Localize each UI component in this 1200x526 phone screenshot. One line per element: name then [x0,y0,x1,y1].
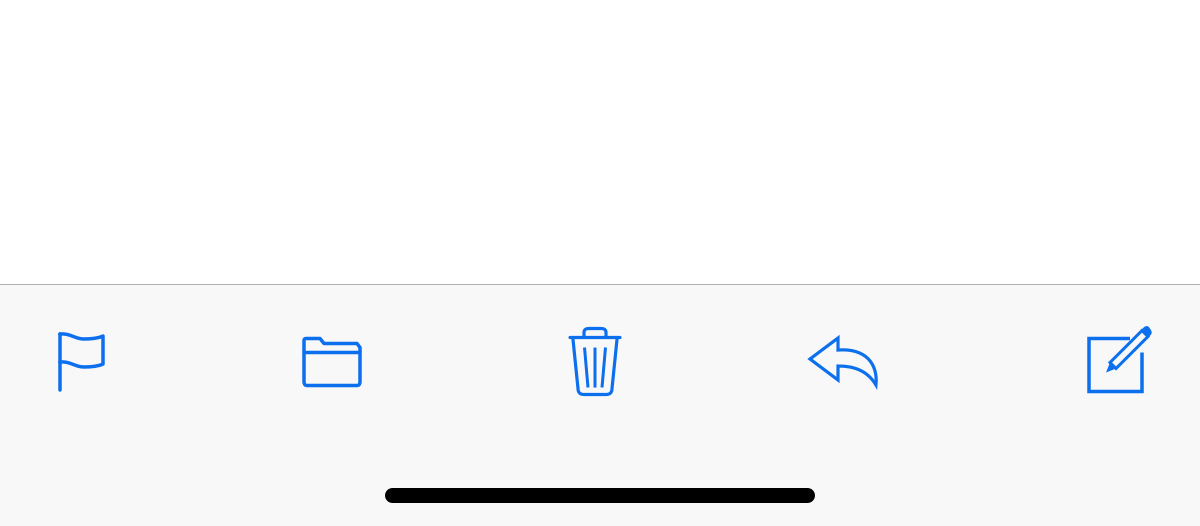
button[interactable]: Compose [1058,310,1178,410]
button[interactable]: Delete [540,310,660,410]
button[interactable]: Reply [799,310,919,410]
button[interactable]: Move to folder [281,310,401,410]
button[interactable]: Flag [22,310,142,410]
